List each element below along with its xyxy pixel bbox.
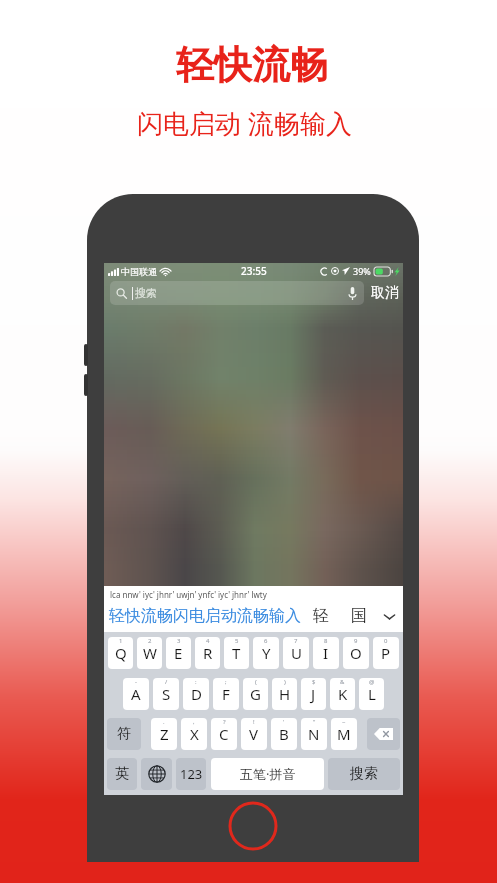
- staticText: H: [279, 684, 291, 704]
- staticText: 7: [294, 637, 298, 645]
- staticText: ": [313, 718, 316, 726]
- button[interactable]: 取消: [369, 281, 401, 305]
- staticText: 5: [235, 637, 239, 645]
- button[interactable]: 8: [313, 637, 339, 669]
- button[interactable]: .: [151, 718, 177, 750]
- staticText: B: [279, 724, 289, 744]
- staticText: !: [253, 718, 255, 726]
- button[interactable]: 搜索: [110, 281, 364, 305]
- staticText: /: [165, 678, 168, 686]
- staticText: 8: [324, 637, 328, 645]
- staticText: Y: [262, 643, 271, 663]
- staticText: :: [195, 678, 197, 686]
- button[interactable]: Switch keyboard: [141, 758, 172, 790]
- staticText: ,: [193, 718, 195, 726]
- staticText: $: [312, 678, 316, 686]
- staticText: 123: [180, 765, 203, 783]
- button[interactable]: 符: [107, 718, 141, 750]
- staticText: ;: [225, 678, 227, 686]
- button[interactable]: :: [183, 678, 209, 710]
- button[interactable]: 五笔·拼音: [211, 758, 324, 790]
- button[interactable]: ,: [181, 718, 207, 750]
- staticText: 闪电启动 流畅输入: [137, 105, 352, 141]
- staticText: R: [203, 643, 213, 663]
- button[interactable]: ': [271, 718, 297, 750]
- staticText: S: [162, 684, 171, 704]
- staticText: &: [340, 678, 345, 686]
- button[interactable]: ): [272, 678, 297, 710]
- button[interactable]: ;: [213, 678, 239, 710]
- staticText: P: [381, 643, 391, 663]
- staticText: E: [174, 643, 183, 663]
- staticText: lca nnw' iyc' jhnr' uwjn' ynfc' iyc' jhn…: [110, 589, 267, 600]
- staticText: G: [250, 684, 261, 704]
- staticText: 取消: [371, 284, 399, 302]
- button[interactable]: 英: [107, 758, 137, 790]
- staticText: J: [311, 684, 316, 704]
- staticText: 国: [351, 606, 367, 626]
- staticText: A: [131, 684, 141, 704]
- staticText: ': [283, 718, 285, 726]
- button[interactable]: /: [153, 678, 179, 710]
- staticText: .: [163, 718, 165, 726]
- staticText: 搜索: [135, 286, 157, 300]
- button[interactable]: 6: [253, 637, 279, 669]
- staticText: (: [255, 678, 257, 686]
- staticText: 2: [148, 637, 152, 645]
- button[interactable]: 5: [224, 637, 249, 669]
- button[interactable]: 2: [137, 637, 162, 669]
- staticText: C: [219, 724, 229, 744]
- button[interactable]: 123: [176, 758, 206, 790]
- button[interactable]: 轻: [310, 606, 332, 626]
- staticText: 搜索: [350, 765, 378, 783]
- button[interactable]: !: [241, 718, 267, 750]
- button[interactable]: Delete: [367, 718, 400, 750]
- staticText: M: [337, 724, 351, 744]
- staticText: ): [284, 678, 286, 686]
- button[interactable]: More candidates: [381, 608, 397, 624]
- staticText: X: [190, 724, 199, 744]
- staticText: V: [249, 724, 259, 744]
- staticText: 23:55: [241, 264, 267, 278]
- button[interactable]: $: [301, 678, 326, 710]
- staticText: 1: [119, 637, 123, 645]
- staticText: I: [323, 643, 329, 663]
- button[interactable]: (: [243, 678, 268, 710]
- button[interactable]: 1: [108, 637, 133, 669]
- button[interactable]: 国: [348, 606, 370, 626]
- staticText: 9: [354, 637, 358, 645]
- staticText: -: [135, 678, 137, 686]
- button[interactable]: 7: [283, 637, 309, 669]
- staticText: 0: [384, 637, 388, 645]
- staticText: Q: [115, 643, 127, 663]
- button[interactable]: 0: [373, 637, 399, 669]
- staticText: 中国联通: [121, 266, 157, 277]
- button[interactable]: 4: [195, 637, 220, 669]
- staticText: Z: [160, 724, 169, 744]
- staticText: 39%: [353, 265, 371, 277]
- button[interactable]: ~: [331, 718, 357, 750]
- staticText: 4: [206, 637, 210, 645]
- staticText: N: [308, 724, 320, 744]
- staticText: 6: [264, 637, 268, 645]
- staticText: 轻: [313, 606, 329, 626]
- staticText: F: [222, 684, 230, 704]
- staticText: W: [143, 643, 157, 663]
- button[interactable]: ": [301, 718, 327, 750]
- staticText: ~: [342, 718, 346, 726]
- button[interactable]: ?: [211, 718, 237, 750]
- staticText: @: [369, 678, 375, 686]
- staticText: U: [291, 643, 302, 663]
- button[interactable]: 轻快流畅闪电启动流畅输入: [109, 606, 301, 626]
- staticText: 轻快流畅: [176, 41, 328, 89]
- button[interactable]: @: [359, 678, 384, 710]
- button[interactable]: &: [330, 678, 355, 710]
- staticText: 3: [177, 637, 181, 645]
- staticText: L: [368, 684, 376, 704]
- button[interactable]: 3: [166, 637, 191, 669]
- button[interactable]: -: [123, 678, 149, 710]
- button[interactable]: 9: [343, 637, 369, 669]
- button[interactable]: 搜索: [328, 758, 400, 790]
- staticText: 五笔·拼音: [240, 765, 296, 783]
- staticText: 符: [117, 725, 131, 743]
